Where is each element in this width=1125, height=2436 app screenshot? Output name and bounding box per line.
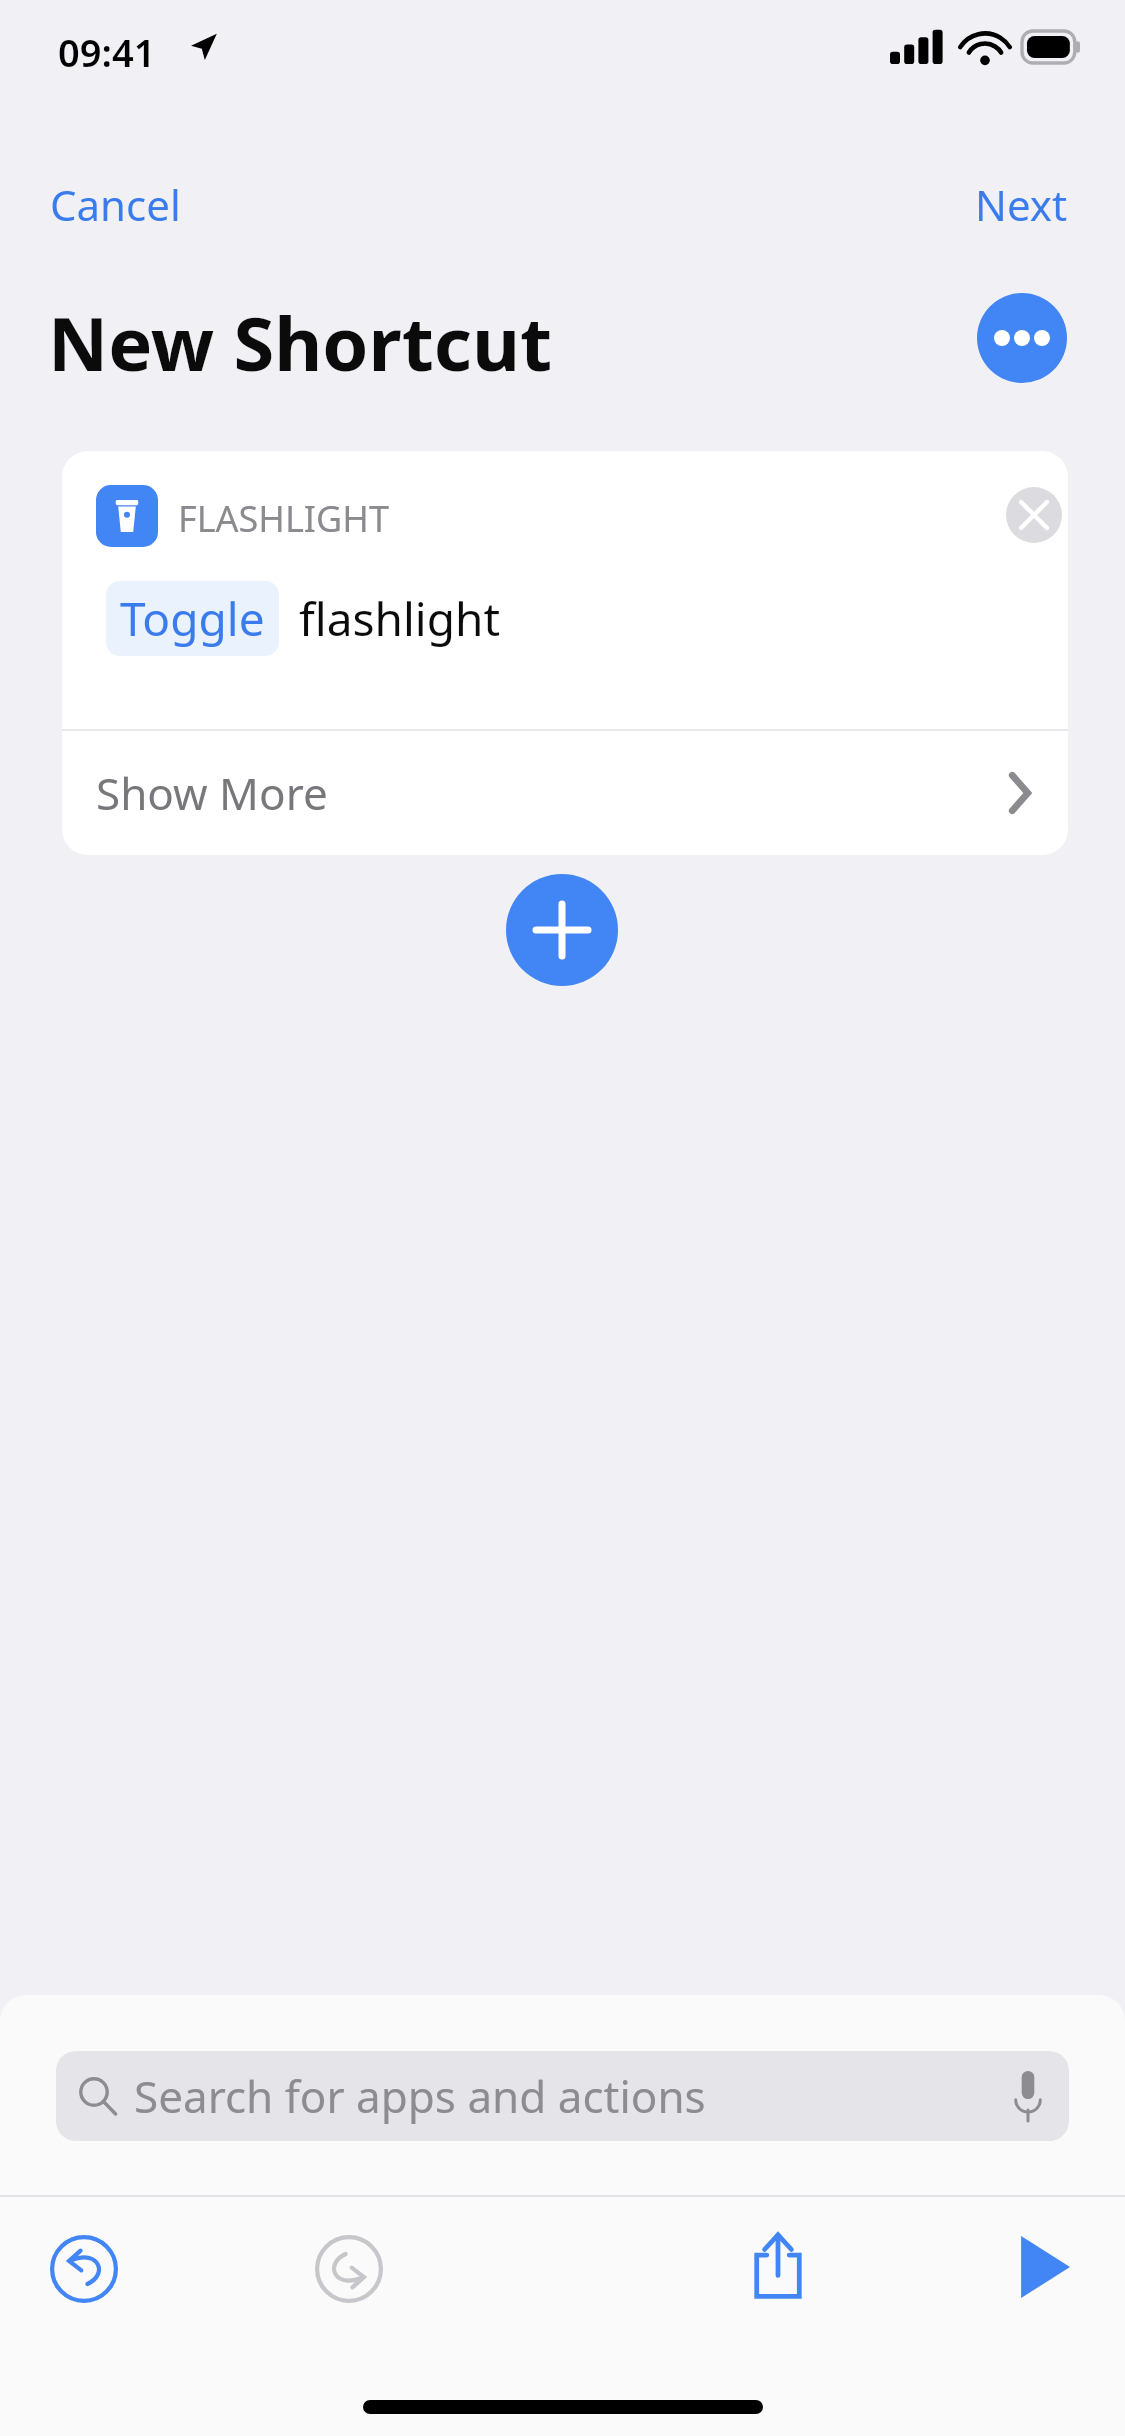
button[interactable]: Cancel: [30, 162, 201, 247]
button[interactable]: Run shortcut: [990, 2213, 1098, 2321]
button[interactable]: Show More: [62, 731, 1068, 855]
button[interactable]: Share: [722, 2211, 834, 2323]
staticText: Cancel: [50, 176, 181, 233]
staticText: Toggle: [120, 587, 265, 650]
staticText: FLASHLIGHT: [178, 494, 389, 543]
button[interactable]: Toggle: [106, 581, 279, 656]
button[interactable]: Undo: [30, 2215, 138, 2323]
button[interactable]: Next: [955, 162, 1088, 247]
button[interactable]: Search for apps and actions: [56, 2051, 1069, 2141]
button[interactable]: More options: [977, 293, 1067, 383]
button[interactable]: Remove action: [1006, 487, 1062, 543]
staticText: 09:41: [58, 26, 156, 78]
staticText: New Shortcut: [48, 292, 553, 393]
button[interactable]: Add action: [506, 874, 618, 986]
button[interactable]: Redo: [295, 2215, 403, 2323]
staticText: Show More: [96, 763, 328, 823]
button[interactable]: FLASHLIGHT: [62, 451, 1068, 729]
staticText: Search for apps and actions: [134, 2066, 706, 2126]
staticText: flashlight: [299, 587, 501, 650]
staticText: Next: [975, 176, 1068, 233]
